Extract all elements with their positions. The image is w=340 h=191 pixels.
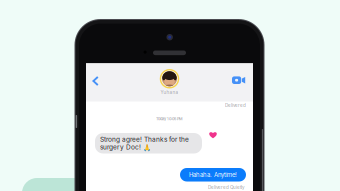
button[interactable]: FaceTime video call [228, 72, 249, 88]
staticText: Delivered Quietly [208, 184, 245, 190]
staticText: Strong agree! Thanks for the surgery Doc… [100, 135, 189, 151]
staticText: Delivered [225, 102, 246, 108]
staticText: Hahaha. Anytime! [189, 171, 237, 178]
button[interactable]: Yuhana [147, 69, 191, 95]
button[interactable]: Back [88, 72, 103, 90]
staticText: Yuhana [160, 89, 178, 95]
staticText: Today 10:05 PM [156, 116, 183, 121]
